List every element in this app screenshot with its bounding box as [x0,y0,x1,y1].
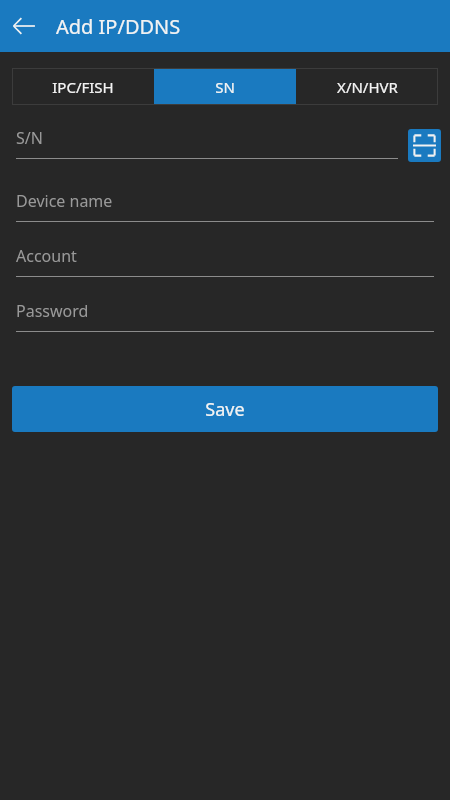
staticText: X/N/HVR [337,77,398,97]
staticText: Account [16,245,77,267]
button[interactable]: Device name [16,182,434,237]
staticText: Device name [16,190,113,212]
button[interactable]: SN [154,68,296,105]
button[interactable]: IPC/FISH [12,68,154,105]
staticText: SN [215,77,235,97]
button[interactable]: Password [16,292,434,347]
button[interactable]: S/N [16,127,398,159]
staticText: Password [16,300,89,322]
button[interactable]: Back [0,2,48,50]
button[interactable]: X/N/HVR [296,68,438,105]
staticText: Add IP/DDNS [56,13,181,40]
staticText: Save [205,397,245,422]
button[interactable]: Save [12,386,438,432]
button[interactable]: Scan QR code [408,129,441,162]
staticText: IPC/FISH [52,77,114,97]
staticText: S/N [16,127,43,149]
button[interactable]: Account [16,237,434,292]
